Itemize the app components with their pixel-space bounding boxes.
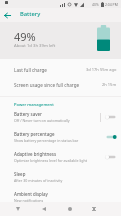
- button[interactable]: Screen usage since full charge: [0, 77, 121, 92]
- staticText: Optimize brightness level for available …: [14, 158, 87, 163]
- staticText: Show battery percentage in status bar: [14, 138, 79, 143]
- button[interactable]: Sleep: [0, 167, 121, 187]
- staticText: New notifications: [14, 198, 44, 203]
- staticText: Ambient display: [14, 191, 48, 197]
- button[interactable]: Adaptive brightness: [0, 147, 121, 167]
- staticText: Battery percentage: [14, 131, 55, 137]
- staticText: About 1d 3h 39m left: [14, 43, 56, 49]
- staticText: Battery: [20, 10, 41, 18]
- button[interactable]: Ambient display: [0, 187, 121, 207]
- staticText: Off / Never turn on automatically: [14, 118, 70, 123]
- button[interactable]: Adaptive brightness: [104, 152, 118, 162]
- staticText: Power management: [14, 102, 54, 108]
- staticText: After 30 minutes of inactivity: [14, 178, 63, 183]
- button[interactable]: Recent apps: [87, 202, 101, 216]
- button[interactable]: Battery saver: [104, 112, 118, 122]
- staticText: Last full charge: [14, 67, 47, 73]
- staticText: 3d 17h 55m ago: [86, 67, 117, 72]
- staticText: Battery saver: [14, 111, 42, 117]
- button[interactable]: Home: [63, 202, 77, 216]
- button[interactable]: Last full charge: [0, 62, 121, 77]
- button[interactable]: Navigate up: [0, 8, 14, 22]
- staticText: 2h 15m: [102, 82, 117, 87]
- staticText: Adaptive brightness: [14, 151, 57, 157]
- button[interactable]: Battery percentage: [0, 127, 121, 147]
- button[interactable]: Hide keyboard: [11, 202, 25, 216]
- staticText: Screen usage since full charge: [14, 82, 80, 88]
- button[interactable]: Battery saver: [0, 107, 121, 127]
- staticText: 40%: [92, 2, 99, 7]
- button[interactable]: Back: [37, 202, 51, 216]
- staticText: 2:04 PM: [105, 2, 118, 7]
- staticText: 49%: [14, 29, 36, 44]
- button[interactable]: Battery percentage: [104, 132, 118, 142]
- staticText: Sleep: [14, 171, 26, 177]
